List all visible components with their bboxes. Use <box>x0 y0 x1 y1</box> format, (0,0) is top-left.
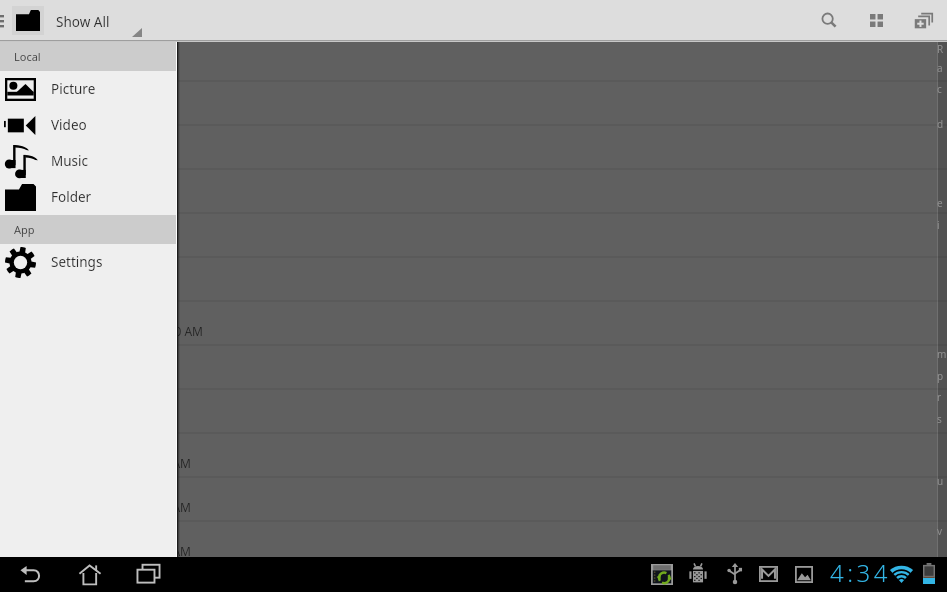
button[interactable]: Menu <box>0 0 7 42</box>
staticText: App <box>14 222 35 237</box>
button[interactable]: Show All <box>56 13 110 31</box>
staticText: m <box>937 347 947 361</box>
staticText: Picture <box>51 80 96 98</box>
staticText: a <box>937 61 943 75</box>
button[interactable]: Back <box>1 557 59 592</box>
button[interactable]: New window <box>899 0 947 42</box>
staticText: p <box>937 369 944 383</box>
button[interactable]: Recent apps <box>117 557 175 592</box>
staticText: 11:20 AM <box>71 499 191 515</box>
button[interactable]: Home <box>59 557 117 592</box>
staticText: 10:35 AM <box>71 455 191 471</box>
staticText: R <box>937 42 944 56</box>
button[interactable]: Video <box>0 107 176 143</box>
staticText: e <box>937 196 943 210</box>
staticText: Settings <box>51 253 103 271</box>
staticText: v <box>937 524 943 538</box>
button[interactable]: Folder <box>0 179 176 215</box>
staticText: c <box>937 82 942 96</box>
button[interactable]: Music <box>0 143 176 179</box>
button[interactable]: Search <box>805 0 853 42</box>
staticText: 4:34 <box>830 556 891 589</box>
button[interactable]: Grid view <box>852 0 900 42</box>
staticText: i <box>937 218 940 232</box>
staticText: Local <box>14 49 41 64</box>
staticText: 9:50 AM <box>83 323 203 339</box>
staticText: Video <box>51 116 87 134</box>
staticText: d <box>937 117 944 131</box>
button[interactable]: Settings <box>0 244 176 280</box>
button[interactable]: Show all folders <box>12 6 44 35</box>
staticText: 11:58 AM <box>71 543 191 559</box>
staticText: s <box>937 412 942 426</box>
staticText: u <box>937 474 944 488</box>
staticText: Music <box>51 152 89 170</box>
button[interactable]: Picture <box>0 71 176 107</box>
staticText: Folder <box>51 188 92 206</box>
staticText: r <box>937 390 942 404</box>
